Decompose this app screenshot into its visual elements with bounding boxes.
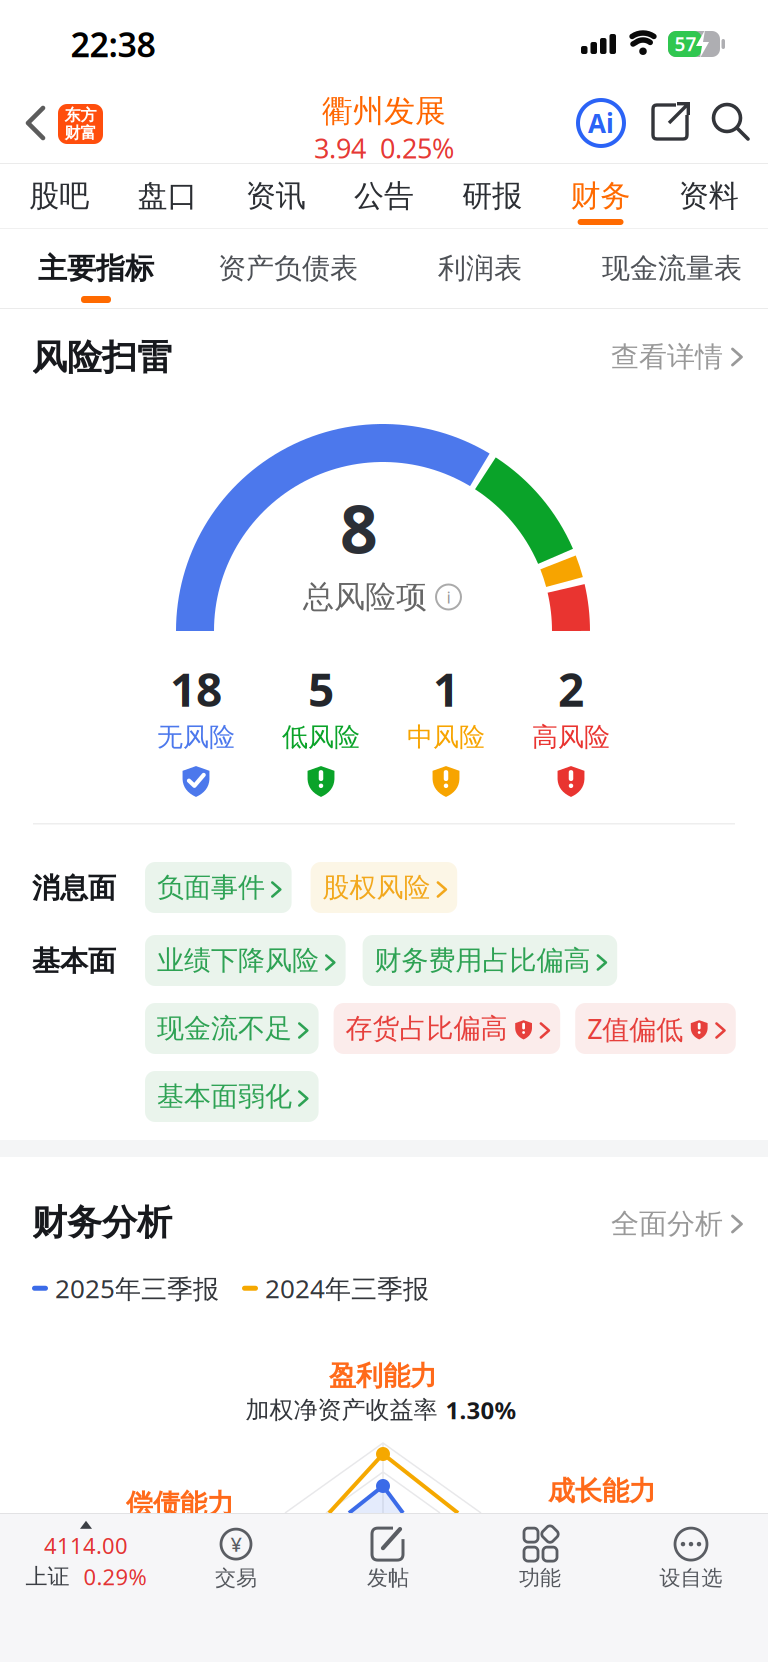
button[interactable]: 发帖: [367, 1523, 409, 1591]
staticText: 无风险: [157, 721, 235, 753]
button[interactable]: 负面事件: [145, 862, 292, 913]
staticText: 2025年三季报: [55, 1271, 219, 1305]
button[interactable]: 搜索: [711, 102, 751, 142]
staticText: 资产负债表: [218, 251, 358, 286]
button[interactable]: 资讯: [222, 164, 330, 228]
staticText: 存货占比偏高: [346, 1012, 508, 1045]
button[interactable]: 交易: [215, 1523, 257, 1591]
staticText: 业绩下降风险: [157, 944, 319, 977]
staticText: 发帖: [367, 1565, 409, 1591]
staticText: 18: [170, 658, 222, 720]
button[interactable]: 财务: [546, 164, 655, 228]
staticText: 风险扫雷: [32, 336, 172, 379]
staticText: 东方: [64, 105, 96, 125]
button[interactable]: 返回: [27, 104, 103, 144]
staticText: 1.30%: [445, 1394, 516, 1426]
button[interactable]: Z值偏低: [575, 1003, 736, 1054]
staticText: 公告: [354, 178, 414, 214]
staticText: 成长能力: [548, 1474, 656, 1508]
staticText: 4114.00: [44, 1531, 128, 1560]
staticText: 上证: [25, 1563, 69, 1590]
staticText: 偿债能力: [126, 1487, 234, 1521]
staticText: 5: [308, 658, 334, 720]
button[interactable]: 盘口: [113, 164, 222, 228]
button[interactable]: 股权风险: [311, 862, 457, 913]
staticText: 财富: [64, 123, 96, 143]
staticText: 财务分析: [32, 1201, 172, 1244]
staticText: ¥: [230, 1531, 241, 1557]
staticText: Z值偏低: [587, 1010, 683, 1046]
staticText: 设自选: [659, 1565, 722, 1591]
button[interactable]: 财务费用占比偏高: [363, 935, 617, 986]
staticText: Ai: [588, 106, 614, 140]
button[interactable]: 研报: [438, 164, 546, 228]
staticText: 资讯: [246, 178, 306, 214]
button[interactable]: Ai: [578, 100, 624, 146]
staticText: 中风险: [407, 721, 485, 753]
staticText: 盘口: [137, 178, 197, 214]
button[interactable]: 股吧: [5, 164, 113, 228]
staticText: 股吧: [29, 178, 89, 214]
button[interactable]: 查看详情: [611, 340, 743, 374]
staticText: 查看详情: [611, 340, 723, 374]
staticText: 基本面: [32, 944, 116, 978]
staticText: 2: [558, 658, 584, 720]
staticText: i: [446, 586, 450, 608]
button[interactable]: 存货占比偏高: [334, 1003, 560, 1054]
staticText: 低风险: [282, 721, 360, 753]
staticText: 财务费用占比偏高: [375, 944, 591, 977]
button[interactable]: 现金流不足: [145, 1003, 319, 1054]
staticText: 0.29%: [83, 1562, 146, 1591]
staticText: 总风险项: [303, 578, 427, 616]
staticText: 基本面弱化: [157, 1080, 292, 1113]
button[interactable]: 设自选: [659, 1523, 722, 1591]
staticText: 现金流量表: [602, 251, 742, 286]
staticText: 研报: [462, 178, 522, 214]
staticText: 股权风险: [323, 871, 431, 904]
button[interactable]: 功能: [519, 1523, 561, 1591]
button[interactable]: 现金流量表: [576, 229, 768, 308]
button[interactable]: 基本面弱化: [145, 1071, 319, 1122]
button[interactable]: 分享: [650, 102, 690, 142]
staticText: 负面事件: [157, 871, 265, 904]
button[interactable]: 资料: [655, 164, 763, 228]
staticText: 1: [433, 658, 459, 720]
staticText: 57: [674, 31, 696, 57]
staticText: 资料: [679, 178, 739, 214]
staticText: 主要指标: [38, 251, 154, 286]
button[interactable]: 业绩下降风险: [145, 935, 346, 986]
staticText: 财务: [571, 178, 631, 214]
staticText: 衢州发展: [322, 92, 446, 130]
staticText: 交易: [215, 1565, 257, 1591]
button[interactable]: 资产负债表: [192, 229, 384, 308]
staticText: 22:38: [70, 21, 155, 67]
staticText: 高风险: [532, 721, 610, 753]
button[interactable]: 全面分析: [611, 1207, 743, 1241]
staticText: 0.25%: [380, 130, 454, 166]
staticText: 8: [340, 484, 378, 572]
staticText: 全面分析: [611, 1207, 723, 1241]
staticText: 3.94: [314, 130, 366, 166]
staticText: 消息面: [32, 871, 116, 905]
staticText: 2024年三季报: [265, 1271, 429, 1305]
staticText: 盈利能力: [329, 1359, 437, 1393]
button[interactable]: 利润表: [384, 229, 576, 308]
staticText: 利润表: [438, 251, 522, 286]
staticText: 功能: [519, 1565, 561, 1591]
button[interactable]: 4114.00: [25, 1521, 146, 1591]
button[interactable]: 主要指标: [0, 229, 192, 308]
staticText: 加权净资产收益率: [245, 1395, 437, 1425]
staticText: 现金流不足: [157, 1012, 292, 1045]
button[interactable]: 公告: [330, 164, 438, 228]
